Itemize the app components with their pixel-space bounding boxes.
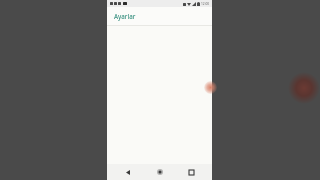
- button[interactable]: Back: [117, 164, 139, 180]
- button[interactable]: Home: [149, 164, 171, 180]
- button[interactable]: Recents: [180, 164, 202, 180]
- button[interactable]: Add: [204, 81, 217, 94]
- staticText: Ayarlar: [114, 12, 136, 20]
- staticText: 12:00: [201, 2, 210, 6]
